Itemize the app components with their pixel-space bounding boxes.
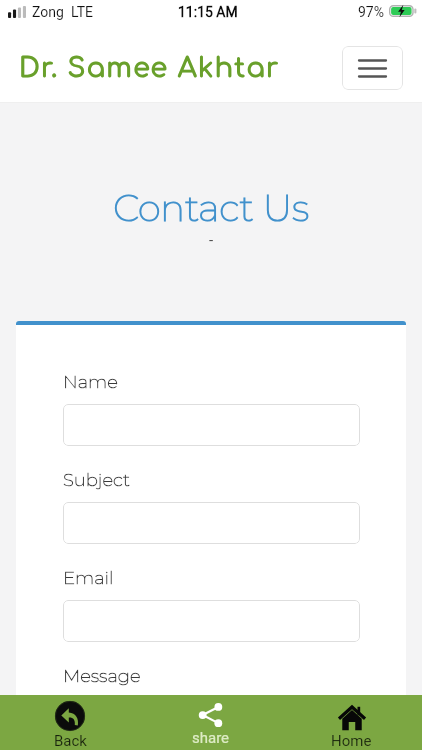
button[interactable]: Menu <box>342 46 403 90</box>
staticText: Name <box>63 371 118 393</box>
button[interactable] <box>63 404 360 446</box>
staticText: Email <box>63 567 114 589</box>
button[interactable] <box>63 502 360 544</box>
staticText: 97% <box>358 4 384 20</box>
staticText: Message <box>63 665 141 687</box>
button[interactable] <box>63 600 360 642</box>
staticText: Zong <box>32 4 64 20</box>
other: Home <box>337 701 367 731</box>
staticText: LTE <box>71 4 93 20</box>
staticText: Home <box>331 732 372 750</box>
button[interactable]: Share <box>140 695 281 750</box>
button[interactable]: Back <box>0 695 140 750</box>
staticText: Subject <box>63 469 130 491</box>
staticText: Contact Us <box>0 185 422 230</box>
other: Share <box>197 701 224 728</box>
staticText: - <box>0 231 422 249</box>
staticText: 11:15 AM <box>178 4 238 20</box>
staticText: Back <box>54 732 87 750</box>
staticText: Dr. Samee Akhtar <box>19 53 280 83</box>
other: Back <box>55 701 85 731</box>
button[interactable]: Home <box>281 695 422 750</box>
staticText: share <box>192 729 230 747</box>
